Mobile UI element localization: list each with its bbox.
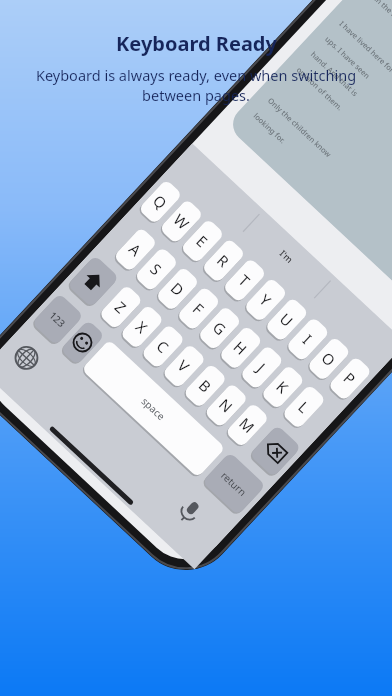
button[interactable]: Phone preview showing the keyboard [0, 0, 392, 696]
staticText: Keyboard is always ready, even when swit… [12, 65, 380, 105]
staticText: Keyboard Ready [116, 30, 277, 57]
